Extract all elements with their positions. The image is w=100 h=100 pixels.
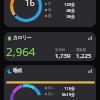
staticText: 最 bbox=[48, 14, 52, 18]
button[interactable]: 深い bbox=[45, 85, 75, 91]
button[interactable]: 睡眠 bbox=[4, 65, 96, 100]
staticText: 深い bbox=[48, 86, 55, 90]
staticText: 46分 bbox=[66, 8, 75, 13]
button[interactable]: 浅い bbox=[45, 91, 75, 97]
button[interactable] bbox=[6, 81, 95, 84]
button[interactable]: 高 bbox=[45, 7, 75, 13]
button[interactable]: グラフを表示 bbox=[87, 35, 93, 41]
staticText: 安静時 bbox=[55, 48, 66, 52]
staticText: 中 bbox=[48, 2, 52, 6]
staticText: カロリー bbox=[13, 35, 32, 41]
staticText: 5h19分 bbox=[61, 92, 75, 97]
staticText: 浅い bbox=[48, 92, 55, 96]
staticText: 高 bbox=[48, 8, 52, 12]
staticText: 36分 bbox=[66, 14, 75, 19]
button[interactable]: カロリー bbox=[4, 32, 96, 61]
button[interactable]: 中 bbox=[45, 1, 75, 7]
staticText: 1,739 bbox=[55, 52, 71, 60]
staticText: 129分 bbox=[64, 2, 75, 7]
button[interactable]: 16 bbox=[4, 0, 96, 27]
button[interactable]: 最 bbox=[45, 13, 75, 19]
staticText: 16 bbox=[25, 0, 35, 9]
button[interactable]: グラフを表示 bbox=[87, 68, 93, 74]
staticText: 睡眠 bbox=[13, 68, 23, 74]
staticText: 118分 bbox=[64, 86, 75, 91]
staticText: 2,964 bbox=[6, 44, 36, 60]
staticText: 運動量 bbox=[76, 48, 87, 52]
staticText: 1,225 bbox=[76, 52, 92, 60]
